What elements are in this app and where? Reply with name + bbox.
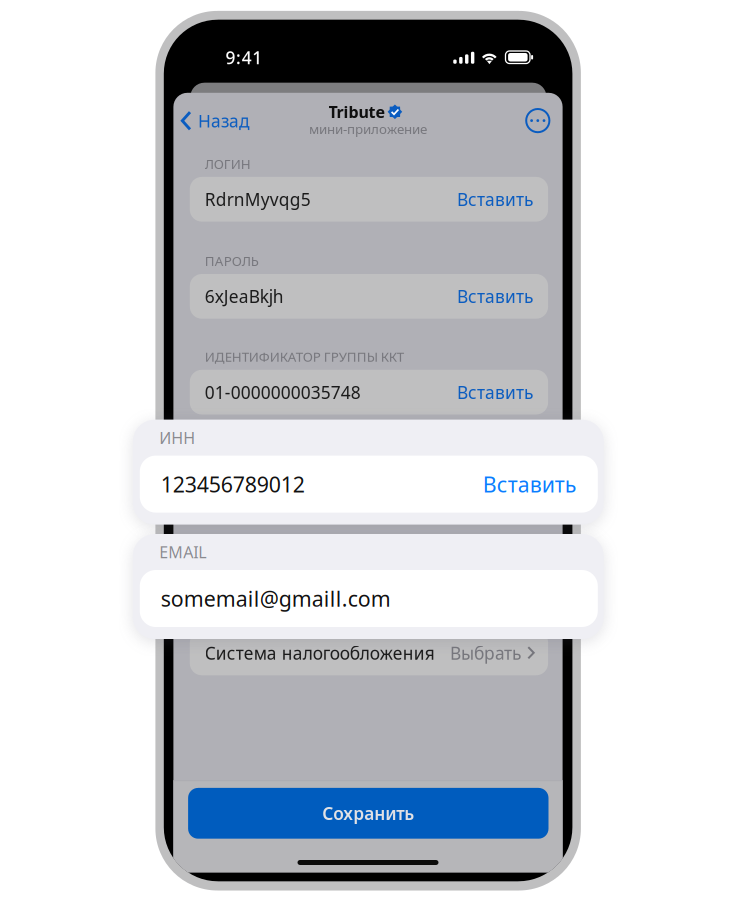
staticText: 123456789012 [161, 470, 305, 498]
staticText: ИНН [159, 427, 195, 448]
staticText: Вставить [457, 188, 533, 211]
staticText: 6xJeaBkjh [205, 285, 284, 308]
button[interactable]: Назад [173, 103, 257, 139]
button[interactable]: Сохранить [188, 788, 548, 839]
staticText: ПАРОЛЬ [205, 252, 259, 270]
staticText: Вставить [483, 470, 577, 498]
staticText: Вставить [457, 381, 533, 404]
staticText: Назад [198, 109, 250, 132]
staticText: somemail@gmaill.com [161, 584, 391, 613]
staticText: EMAIL [159, 541, 206, 563]
button[interactable]: RdrnMyvqg5 [190, 177, 548, 222]
staticText: 9:41 [225, 46, 262, 69]
staticText: мини-приложение [309, 120, 427, 138]
staticText: Вставить [457, 285, 533, 308]
staticText: Сохранить [322, 802, 414, 825]
staticText: Выбрать [450, 641, 521, 664]
button[interactable]: More [520, 103, 556, 139]
staticText: ЛОГИН [205, 155, 251, 173]
staticText: ИНН [205, 445, 235, 462]
staticText: 01-0000000035748 [205, 381, 361, 404]
button[interactable]: Система налогообложения [190, 631, 548, 675]
staticText: ИДЕНТИФИКАТОР ГРУППЫ ККТ [205, 348, 404, 365]
staticText: 123456789012 [205, 478, 325, 501]
staticText: Система налогообложения [205, 641, 435, 664]
button[interactable]: 123456789012 [190, 467, 548, 511]
staticText: somemail@gmaill.com [205, 574, 387, 597]
button[interactable]: somemail@gmaill.com [190, 563, 548, 608]
staticText: RdrnMyvqg5 [205, 188, 311, 211]
staticText: Tribute [329, 101, 386, 122]
staticText: Вставить [457, 478, 533, 501]
button[interactable]: 01-0000000035748 [190, 370, 548, 414]
staticText: EMAIL [205, 541, 245, 559]
button[interactable]: 6xJeaBkjh [190, 274, 548, 319]
